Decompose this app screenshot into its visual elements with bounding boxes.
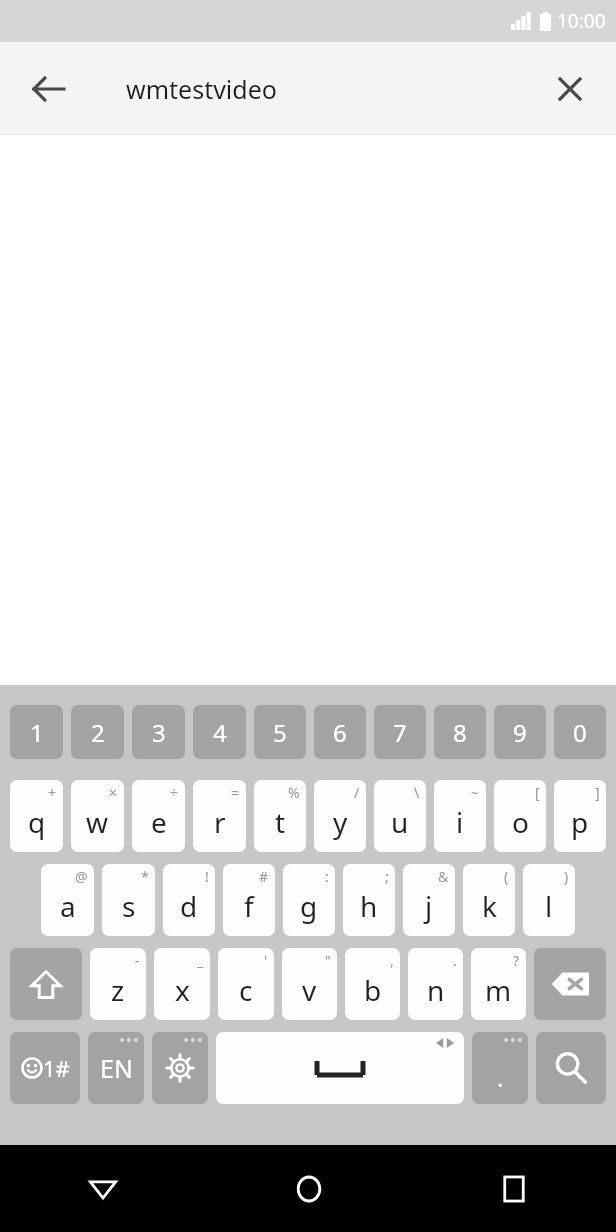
button[interactable]: 9 — [494, 705, 546, 759]
button[interactable]: Back — [0, 1145, 206, 1232]
staticText: : — [325, 867, 329, 886]
staticText: d — [180, 887, 198, 925]
staticText: t — [275, 803, 286, 841]
button[interactable]: \ — [374, 780, 426, 852]
button[interactable]: - — [90, 948, 146, 1020]
button[interactable]: . — [408, 948, 463, 1020]
staticText: . — [497, 1061, 504, 1094]
button[interactable]: Search — [536, 1032, 606, 1104]
staticText: v — [302, 971, 317, 1009]
button[interactable]: EN — [88, 1032, 144, 1104]
staticText: b — [364, 971, 382, 1009]
button[interactable]: Period — [472, 1032, 528, 1104]
button[interactable]: # — [223, 864, 275, 936]
staticText: y — [333, 803, 348, 841]
button[interactable]: Home — [206, 1145, 411, 1232]
staticText: o — [512, 803, 529, 841]
staticText: / — [354, 783, 360, 802]
button[interactable]: 5 — [254, 705, 306, 759]
button[interactable]: 2 — [71, 705, 124, 759]
staticText: q — [28, 803, 46, 841]
staticText: u — [391, 803, 409, 841]
staticText: ( — [504, 867, 509, 886]
staticText: # — [259, 867, 269, 886]
button[interactable]: [ — [494, 780, 546, 852]
staticText: , — [390, 951, 394, 970]
button[interactable]: _ — [154, 948, 210, 1020]
button[interactable]: Back — [22, 63, 74, 115]
staticText: m — [485, 971, 512, 1009]
staticText: r — [214, 803, 226, 841]
button[interactable]: ? — [471, 948, 526, 1020]
button[interactable]: ] — [554, 780, 606, 852]
staticText: & — [438, 867, 449, 886]
button[interactable]: % — [254, 780, 306, 852]
button[interactable]: 0 — [554, 705, 606, 759]
button[interactable]: , — [345, 948, 400, 1020]
staticText: h — [360, 887, 378, 925]
button[interactable]: 4 — [193, 705, 246, 759]
button[interactable]: * — [102, 864, 155, 936]
staticText: c — [239, 971, 253, 1009]
staticText: 10:00 — [557, 8, 606, 34]
button[interactable]: Emoji and symbols — [10, 1032, 80, 1104]
staticText: g — [300, 887, 318, 925]
button[interactable]: : — [283, 864, 335, 936]
button[interactable]: ! — [163, 864, 215, 936]
button[interactable]: 3 — [132, 705, 185, 759]
button[interactable]: ~ — [434, 780, 486, 852]
button[interactable]: ÷ — [132, 780, 185, 852]
button[interactable]: Space — [216, 1032, 464, 1104]
staticText: @ — [75, 867, 88, 886]
button[interactable]: × — [71, 780, 124, 852]
staticText: - — [135, 951, 140, 970]
staticText: 7 — [393, 716, 407, 749]
staticText: 1# — [43, 1053, 70, 1083]
staticText: 1 — [30, 716, 44, 749]
button[interactable]: 1 — [10, 705, 63, 759]
button[interactable]: / — [314, 780, 366, 852]
button[interactable]: 8 — [434, 705, 486, 759]
button[interactable]: Settings — [152, 1032, 208, 1104]
button[interactable]: ) — [523, 864, 575, 936]
button[interactable]: Clear — [546, 65, 594, 113]
button[interactable]: @ — [41, 864, 94, 936]
button[interactable]: ; — [343, 864, 395, 936]
staticText: _ — [197, 951, 204, 970]
button[interactable]: Recents — [411, 1145, 616, 1232]
staticText: i — [456, 803, 464, 841]
button[interactable]: 7 — [374, 705, 426, 759]
staticText: k — [482, 887, 497, 925]
staticText: wmtestvideo — [126, 72, 277, 106]
staticText: EN — [100, 1051, 133, 1085]
staticText: x — [175, 971, 190, 1009]
staticText: \ — [414, 783, 420, 802]
staticText: p — [571, 803, 589, 841]
staticText: * — [141, 867, 149, 886]
button[interactable]: 6 — [314, 705, 366, 759]
staticText: ' — [264, 951, 268, 970]
staticText: " — [325, 951, 331, 970]
button[interactable]: Shift — [10, 948, 82, 1020]
button[interactable]: + — [10, 780, 63, 852]
staticText: ; — [385, 867, 389, 886]
staticText: . — [453, 951, 457, 970]
staticText: 4 — [213, 716, 227, 749]
staticText: ÷ — [170, 783, 179, 802]
staticText: × — [109, 783, 118, 802]
staticText: [ — [535, 783, 540, 802]
staticText: 3 — [152, 716, 166, 749]
staticText: 5 — [273, 716, 287, 749]
button[interactable]: & — [403, 864, 455, 936]
button[interactable]: = — [193, 780, 246, 852]
staticText: l — [545, 887, 553, 925]
button[interactable]: ' — [218, 948, 274, 1020]
staticText: 8 — [453, 716, 467, 749]
staticText: j — [425, 887, 433, 925]
staticText: n — [427, 971, 445, 1009]
button[interactable]: Backspace — [534, 948, 606, 1020]
staticText: 6 — [333, 716, 347, 749]
button[interactable]: " — [282, 948, 337, 1020]
button[interactable]: ( — [463, 864, 515, 936]
staticText: e — [151, 803, 167, 841]
